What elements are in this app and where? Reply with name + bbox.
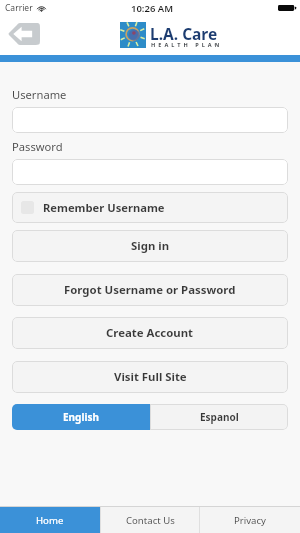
button[interactable]: Home bbox=[0, 507, 100, 533]
staticText: Carrier bbox=[5, 2, 33, 14]
staticText: Remember Username bbox=[43, 200, 165, 215]
button[interactable]: English bbox=[12, 404, 150, 430]
staticText: Create Account bbox=[106, 325, 194, 341]
staticText: Forgot Username or Password bbox=[64, 282, 236, 298]
staticText: 10:26 AM bbox=[131, 2, 174, 15]
button[interactable]: Espanol bbox=[150, 404, 288, 430]
button[interactable]: Create Account bbox=[12, 317, 288, 349]
staticText: Username bbox=[12, 87, 67, 102]
staticText: Privacy bbox=[234, 514, 266, 527]
staticText: HEALTH PLAN bbox=[151, 41, 223, 49]
staticText: Sign in bbox=[131, 238, 170, 254]
staticText: English bbox=[63, 410, 99, 424]
button[interactable] bbox=[12, 107, 288, 133]
button[interactable]: Sign in bbox=[12, 230, 288, 262]
button[interactable]: Visit Full Site bbox=[12, 361, 288, 393]
staticText: L.A. Care bbox=[150, 23, 218, 44]
button[interactable]: Forgot Username or Password bbox=[12, 274, 288, 306]
staticText: Visit Full Site bbox=[114, 369, 187, 385]
staticText: Espanol bbox=[200, 410, 239, 424]
button[interactable]: Privacy bbox=[200, 507, 300, 533]
button[interactable]: Back bbox=[8, 23, 40, 45]
button[interactable]: Remember Username bbox=[12, 192, 288, 223]
staticText: Home bbox=[36, 514, 64, 527]
button[interactable] bbox=[12, 159, 288, 185]
staticText: Contact Us bbox=[126, 514, 175, 527]
staticText: Password bbox=[12, 139, 63, 154]
button[interactable]: Contact Us bbox=[101, 507, 199, 533]
staticText: ® bbox=[214, 42, 218, 47]
